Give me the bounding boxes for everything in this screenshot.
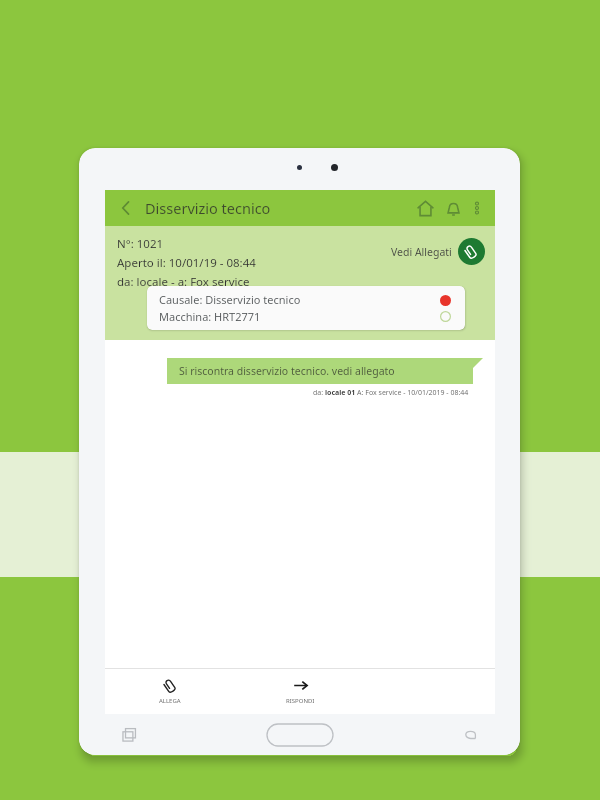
staticText: N°: 1021	[117, 236, 164, 252]
button[interactable]: Home	[411, 194, 439, 222]
button[interactable]: Notifications	[439, 194, 467, 222]
staticText: Vedi Allegati	[391, 245, 452, 259]
staticText: Causale: Disservizio tecnico	[159, 292, 301, 307]
button[interactable]: Back	[113, 195, 139, 221]
button[interactable]: Vedi Allegati	[391, 238, 485, 265]
staticText: RISPONDI	[286, 697, 315, 705]
button[interactable]: Back	[452, 718, 486, 752]
button[interactable]: ALLEGA	[155, 674, 185, 709]
button[interactable]: Si riscontra disservizio tecnico. vedi a…	[167, 358, 473, 384]
staticText: Aperto il: 10/01/19 - 08:44	[117, 255, 256, 271]
button[interactable]: Causale: Disservizio tecnico	[147, 286, 465, 330]
staticText: da: locale 01 A: Fox service - 10/01/201…	[313, 388, 469, 398]
button[interactable]: Home	[267, 724, 333, 746]
button[interactable]: RISPONDI	[282, 674, 319, 709]
button[interactable]: More options	[467, 198, 487, 218]
staticText: da: locale - a: Fox service	[117, 274, 250, 290]
staticText: Si riscontra disservizio tecnico. vedi a…	[179, 364, 395, 378]
staticText: ALLEGA	[159, 697, 181, 705]
staticText: Macchina: HRT2771	[159, 309, 261, 324]
staticText: Disservizio tecnico	[145, 198, 271, 218]
button[interactable]: Recent apps	[113, 718, 147, 752]
